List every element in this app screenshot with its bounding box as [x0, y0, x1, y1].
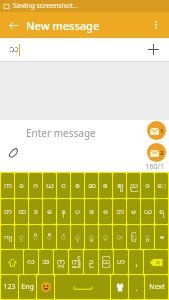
staticText: ခ	[19, 180, 24, 192]
staticText: ဓ	[47, 206, 52, 218]
button[interactable]: 123	[1, 275, 18, 299]
button[interactable]: ဘ	[113, 199, 126, 224]
staticText: ု	[75, 232, 80, 242]
staticText: ဝ	[145, 180, 150, 192]
staticText: က	[4, 180, 12, 192]
staticText: ဥ	[89, 256, 94, 268]
button[interactable]: မ	[127, 199, 140, 224]
staticText: .	[135, 282, 138, 293]
button[interactable]: ဣ	[54, 250, 68, 274]
button[interactable]: Back	[0, 12, 26, 38]
staticText: ဈ	[117, 180, 123, 192]
staticText: ပ	[75, 206, 80, 218]
button[interactable]: ီ	[43, 225, 56, 249]
staticText: ဘ	[116, 206, 124, 218]
staticText: ့	[103, 232, 108, 242]
button[interactable]: Voice input	[111, 275, 128, 299]
button[interactable]: .	[129, 275, 144, 299]
staticText: ဟ	[117, 256, 125, 268]
button[interactable]: Emoji	[37, 275, 54, 299]
button[interactable]: ဥ	[84, 250, 98, 274]
button[interactable]: က	[1, 173, 14, 198]
staticText: New message	[26, 18, 100, 33]
staticText: ရ	[159, 206, 164, 218]
button[interactable]: Eng	[19, 275, 36, 299]
button[interactable]: ည	[127, 173, 140, 198]
button[interactable]: ူ	[85, 225, 98, 249]
staticText: ြ	[131, 232, 137, 242]
staticText: ဒ	[33, 206, 38, 218]
staticText: ကျ	[4, 232, 12, 242]
button[interactable]: ဗ	[99, 199, 112, 224]
staticText: ယ	[144, 206, 152, 218]
staticText: ဃ	[46, 180, 54, 192]
button[interactable]: ထ	[15, 199, 28, 224]
staticText: ိ	[33, 232, 38, 242]
button[interactable]: စ	[71, 173, 84, 198]
button[interactable]: ဟ	[114, 250, 128, 274]
button[interactable]: ပ	[71, 199, 84, 224]
button[interactable]: ဩ	[99, 250, 113, 274]
button[interactable]: Backspace	[144, 250, 168, 274]
button[interactable]: ဃ	[43, 173, 56, 198]
button[interactable]: ဓ	[43, 199, 56, 224]
staticText: ဩ	[101, 256, 111, 268]
staticText: ီ	[47, 232, 52, 242]
staticText: ွ	[145, 232, 150, 242]
button[interactable]: ဒ	[29, 199, 42, 224]
button[interactable]: င	[57, 173, 70, 198]
button[interactable]: ္	[15, 225, 28, 249]
button[interactable]: ဆ	[85, 173, 98, 198]
button[interactable]: ွ	[141, 225, 154, 249]
staticText: ဤ	[71, 256, 81, 268]
button[interactable]: Send message 2	[147, 143, 166, 162]
button[interactable]: Next	[145, 275, 168, 299]
button[interactable]: အ	[39, 250, 53, 274]
staticText: င	[61, 180, 66, 192]
button[interactable]: ယ	[141, 199, 154, 224]
staticText: လ	[27, 256, 35, 268]
button[interactable]: ံ	[57, 225, 70, 249]
button[interactable]: ေ	[155, 173, 168, 198]
button[interactable]: ဂ	[29, 173, 42, 198]
button[interactable]: န	[57, 199, 70, 224]
staticText: ေ	[157, 180, 167, 192]
staticText: ံ	[61, 232, 66, 242]
button[interactable]: ဖ	[85, 199, 98, 224]
button[interactable]: Send message 1	[147, 121, 166, 140]
staticText: ဆ	[88, 180, 96, 192]
button[interactable]: ိ	[29, 225, 42, 249]
button[interactable]: Add recipient	[142, 38, 165, 61]
staticText: 123	[3, 282, 16, 292]
staticText: မ	[131, 206, 136, 218]
button[interactable]: Space	[55, 275, 110, 299]
button[interactable]: ကျ	[1, 225, 14, 249]
staticText: Enter message	[26, 126, 96, 140]
button[interactable]: ု	[71, 225, 84, 249]
button[interactable]: ,	[129, 250, 143, 274]
button[interactable]: ခ	[15, 173, 28, 198]
staticText: Saving screenshot...	[13, 1, 79, 11]
staticText: န	[61, 206, 66, 218]
staticText: း	[116, 232, 123, 242]
button[interactable]: း	[113, 225, 126, 249]
button[interactable]: ့	[99, 225, 112, 249]
staticText: ထ	[18, 206, 26, 218]
button[interactable]: ဇ	[99, 173, 112, 198]
staticText: 1	[160, 127, 164, 135]
staticText: ဂ	[33, 180, 38, 192]
button[interactable]: ဧ	[155, 225, 168, 249]
button[interactable]: တ	[1, 199, 14, 224]
button[interactable]: Attach	[2, 141, 24, 163]
button[interactable]: လ	[24, 250, 38, 274]
button[interactable]: ဈ	[113, 173, 126, 198]
button[interactable]: ဝ	[141, 173, 154, 198]
button[interactable]: ြ	[127, 225, 140, 249]
staticText: ူ	[89, 232, 94, 242]
button[interactable]: Shift	[1, 250, 23, 274]
button[interactable]: ရ	[155, 199, 168, 224]
staticText: Eng	[21, 282, 34, 292]
staticText: ည	[130, 180, 138, 192]
button[interactable]: More options	[143, 12, 169, 38]
button[interactable]: ဤ	[69, 250, 83, 274]
